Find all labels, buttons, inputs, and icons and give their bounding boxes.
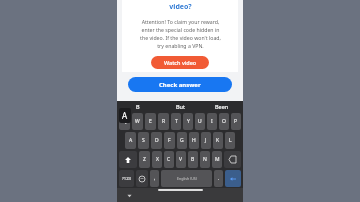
button[interactable]: U [195,113,205,130]
button[interactable]: F [164,132,175,149]
staticText: ?123 [122,176,132,182]
staticText: W [135,118,140,125]
staticText: Been [215,103,229,110]
button[interactable]: Enter [225,170,241,187]
button[interactable]: But [159,101,201,112]
staticText: E [149,118,152,125]
button[interactable]: E [145,113,156,130]
button[interactable]: English (US) [161,170,212,187]
staticText: A [129,137,133,144]
button[interactable]: . [214,170,223,187]
staticText: X [156,156,159,163]
staticText: But [176,103,185,110]
staticText: . [218,175,220,182]
staticText: G [180,137,184,144]
button[interactable]: R [158,113,169,130]
button[interactable]: P [231,113,241,130]
staticText: video? [169,2,192,12]
button[interactable]: Y [183,113,193,130]
button[interactable]: ?123 [119,170,134,187]
button[interactable]: N [200,151,210,168]
button[interactable]: C [164,151,174,168]
staticText: O [222,118,226,125]
button[interactable]: Been [201,101,243,112]
button[interactable]: Watch video [151,56,209,69]
button[interactable]: O [219,113,229,130]
button[interactable]: W [132,113,143,130]
button[interactable]: V [176,151,186,168]
staticText: F [168,137,171,144]
staticText: Z [143,156,146,163]
staticText: Y [187,118,190,125]
staticText: Check answer [159,81,201,89]
button[interactable]: S [138,132,149,149]
button[interactable]: M [212,151,222,168]
button[interactable]: H [189,132,199,149]
button[interactable]: Hide keyboard [126,192,133,199]
staticText: H [192,137,196,144]
staticText: P [234,118,238,125]
staticText: V [179,156,183,163]
button[interactable]: I [207,113,217,130]
staticText: Watch video [164,59,197,66]
staticText: , [154,175,156,182]
button[interactable]: G [177,132,187,149]
staticText: L [229,137,232,144]
button[interactable]: T [171,113,181,130]
button[interactable]: Q [119,113,130,130]
button[interactable]: B [188,151,198,168]
staticText: S [142,137,145,144]
staticText: Q [123,118,127,125]
staticText: D [155,137,159,144]
button[interactable]: Backspace [224,151,241,168]
staticText: Attention! To claim your reward, enter t… [140,18,221,49]
button[interactable]: D [151,132,162,149]
staticText: R [162,118,166,125]
staticText: A [122,110,128,121]
button[interactable]: X [152,151,162,168]
button[interactable]: Z [139,151,150,168]
staticText: K [216,137,220,144]
staticText: J [205,137,207,144]
staticText: M [215,156,220,163]
staticText: English (US) [177,176,197,181]
staticText: U [198,118,202,125]
button[interactable]: A [125,132,136,149]
button[interactable]: Check answer [128,77,232,92]
button[interactable]: L [225,132,235,149]
button[interactable]: Shift [119,151,137,168]
staticText: B [136,103,140,110]
staticText: T [175,118,178,125]
staticText: I [211,118,213,125]
staticText: C [167,156,171,163]
button[interactable]: B [117,101,159,112]
staticText: N [203,156,207,163]
button[interactable]: Emoji [136,170,148,187]
button[interactable]: J [201,132,211,149]
button[interactable]: , [150,170,159,187]
button[interactable]: K [213,132,223,149]
staticText: B [191,156,195,163]
